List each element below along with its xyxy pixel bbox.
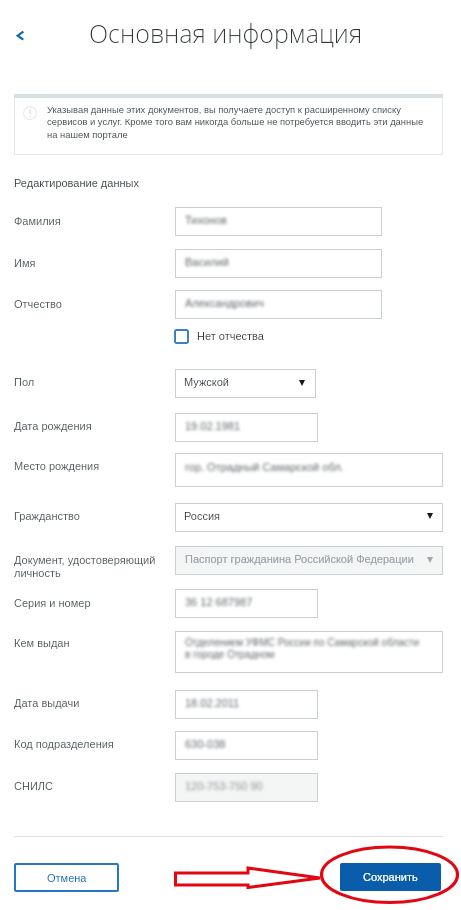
staticText: 18.02.2011 (185, 697, 240, 709)
staticText: Отмена (47, 872, 87, 884)
button[interactable] (175, 249, 382, 278)
staticText: Россия (184, 510, 221, 522)
button[interactable] (175, 207, 382, 236)
staticText: 36 12 687987 (185, 596, 253, 608)
staticText: Редактирование данных (14, 177, 139, 189)
staticText: Отчество (14, 298, 62, 310)
button[interactable] (175, 290, 382, 319)
staticText: Указывая данные этих документов, вы полу… (47, 104, 433, 140)
staticText: Серия и номер (14, 597, 91, 609)
button[interactable] (175, 546, 443, 575)
staticText: Место рождения (14, 460, 100, 472)
staticText: Дата рождения (14, 420, 92, 432)
staticText: Код подразделения (14, 738, 114, 750)
button[interactable] (175, 453, 443, 487)
button[interactable] (175, 503, 443, 532)
button[interactable]: Назад (6, 22, 33, 49)
staticText: Сохранить (363, 871, 418, 883)
button[interactable] (175, 413, 318, 442)
button[interactable]: Отмена (14, 863, 119, 892)
staticText: Мужской (184, 376, 229, 388)
staticText: 120-753-750 90 (185, 780, 263, 792)
staticText: 19.02.1981 (185, 420, 241, 432)
staticText: Пол (14, 376, 35, 388)
staticText: Нет отчества (197, 330, 264, 342)
staticText: Дата выдачи (14, 697, 80, 709)
button[interactable] (175, 631, 443, 673)
staticText: Отделением УФМС России по Самарской обла… (185, 637, 419, 660)
staticText: Тихонов (185, 214, 227, 226)
staticText: Имя (14, 257, 36, 269)
button[interactable] (175, 369, 316, 398)
staticText: Фамилия (14, 215, 61, 227)
staticText: гор. Отрадный Самарской обл. (185, 461, 344, 473)
staticText: Александрович (185, 297, 264, 309)
staticText: СНИЛС (14, 780, 53, 792)
staticText: Паспорт гражданина Российской Федерации (185, 553, 414, 565)
button[interactable] (175, 589, 318, 618)
staticText: Гражданство (14, 510, 80, 522)
staticText: Кем выдан (14, 637, 70, 649)
button[interactable] (175, 773, 318, 802)
button[interactable] (175, 690, 318, 719)
staticText: 630-038 (185, 738, 226, 750)
button[interactable] (175, 731, 318, 760)
staticText: Основная информация (89, 16, 363, 50)
staticText: Василий (185, 256, 229, 268)
button[interactable]: Сохранить (340, 863, 441, 891)
staticText: Документ, удостоверяющий личность (14, 554, 156, 580)
button[interactable]: Нет отчества (174, 328, 264, 344)
